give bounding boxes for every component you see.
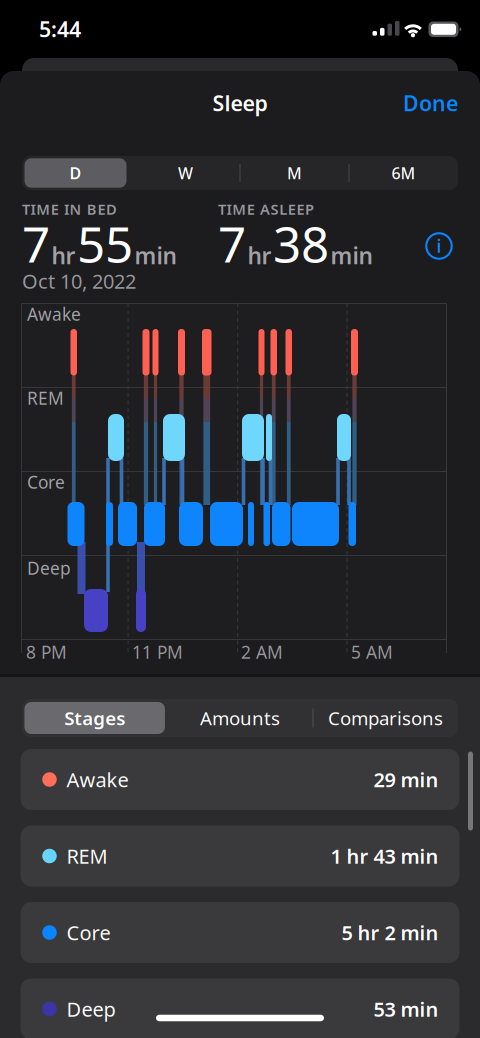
button[interactable]: D: [23, 158, 127, 187]
staticText: Done: [403, 89, 458, 117]
staticText: 55: [77, 210, 133, 276]
staticText: 1 hr 43 min: [330, 843, 438, 869]
button[interactable]: Awake: [20, 749, 459, 810]
button[interactable]: Done: [378, 85, 458, 121]
staticText: 7: [218, 210, 246, 276]
staticText: 5 AM: [351, 640, 393, 663]
staticText: Stages: [64, 706, 125, 730]
button[interactable]: M: [242, 158, 346, 187]
staticText: Oct 10, 2022: [22, 268, 136, 294]
staticText: hr: [247, 240, 271, 270]
staticText: Deep: [27, 556, 71, 579]
staticText: 5:44: [39, 15, 81, 43]
button[interactable]: W: [133, 158, 237, 187]
button[interactable]: Stages: [20, 702, 170, 734]
staticText: 8 PM: [26, 640, 67, 663]
staticText: W: [178, 162, 193, 184]
staticText: Amounts: [200, 706, 280, 730]
staticText: TIME IN BED: [22, 199, 117, 219]
button[interactable]: Core: [20, 902, 459, 963]
staticText: Core: [27, 470, 65, 493]
staticText: Awake: [27, 302, 81, 325]
staticText: 2 AM: [241, 640, 283, 663]
staticText: Sleep: [212, 89, 267, 117]
button[interactable]: 6M: [351, 158, 455, 187]
staticText: Comparisons: [328, 706, 443, 730]
staticText: 11 PM: [132, 640, 183, 663]
button[interactable]: Comparisons: [310, 702, 460, 734]
staticText: min: [330, 240, 372, 270]
staticText: REM: [66, 843, 107, 869]
staticText: hr: [51, 240, 75, 270]
staticText: 6M: [391, 162, 415, 184]
staticText: Deep: [66, 996, 115, 1022]
button[interactable]: [24, 158, 126, 188]
staticText: 38: [273, 210, 329, 276]
staticText: REM: [27, 386, 64, 409]
staticText: Core: [66, 919, 110, 946]
button[interactable]: REM: [20, 825, 459, 886]
staticText: D: [69, 162, 81, 184]
staticText: 29 min: [373, 766, 438, 793]
staticText: 53 min: [373, 996, 438, 1022]
button[interactable]: [24, 702, 165, 734]
button[interactable]: Deep: [20, 978, 459, 1038]
staticText: M: [287, 162, 302, 184]
button[interactable]: i: [424, 231, 454, 261]
button[interactable]: Amounts: [165, 702, 315, 734]
staticText: min: [134, 240, 176, 270]
staticText: Awake: [66, 766, 128, 793]
staticText: TIME ASLEEP: [218, 199, 314, 219]
staticText: i: [436, 234, 441, 257]
staticText: 5 hr 2 min: [341, 919, 438, 946]
staticText: 7: [22, 210, 50, 276]
